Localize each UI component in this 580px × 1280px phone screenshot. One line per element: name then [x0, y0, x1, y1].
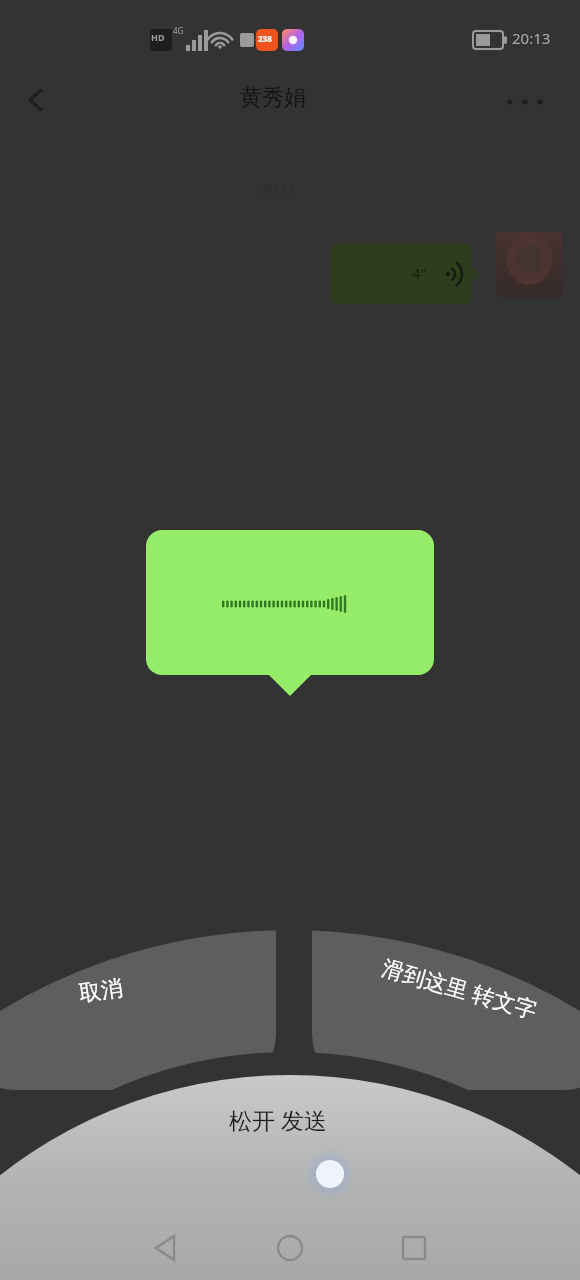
- button[interactable]: 松开 发送: [229, 1104, 327, 1135]
- staticText: 238: [258, 33, 272, 44]
- button[interactable]: 4": [330, 244, 480, 304]
- button[interactable]: 滑到这里 转文字: [312, 925, 580, 1045]
- button[interactable]: Back: [14, 76, 62, 124]
- button[interactable]: Avatar: [496, 232, 562, 298]
- staticText: 黄秀娟: [240, 84, 306, 112]
- staticText: HD: [151, 31, 165, 43]
- staticText: 滑到这里 转文字: [379, 951, 541, 1024]
- button[interactable]: More options: [502, 78, 550, 126]
- button[interactable]: Recent apps: [388, 1222, 440, 1274]
- staticText: 4": [412, 263, 427, 283]
- staticText: 4G: [173, 25, 184, 36]
- button[interactable]: Back: [140, 1222, 192, 1274]
- button[interactable]: Home: [264, 1222, 316, 1274]
- staticText: 20:13: [512, 28, 551, 48]
- button[interactable]: 取消: [0, 925, 276, 1045]
- staticText: 取消: [77, 974, 125, 1008]
